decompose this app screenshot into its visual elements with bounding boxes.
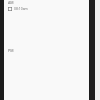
staticText: PM xyxy=(8,48,14,53)
staticText: AM xyxy=(8,0,14,4)
button[interactable]: Toggle alarm xyxy=(8,7,12,11)
staticText: 08:10am xyxy=(14,6,28,11)
button[interactable]: Toggle alarm xyxy=(4,5,89,12)
